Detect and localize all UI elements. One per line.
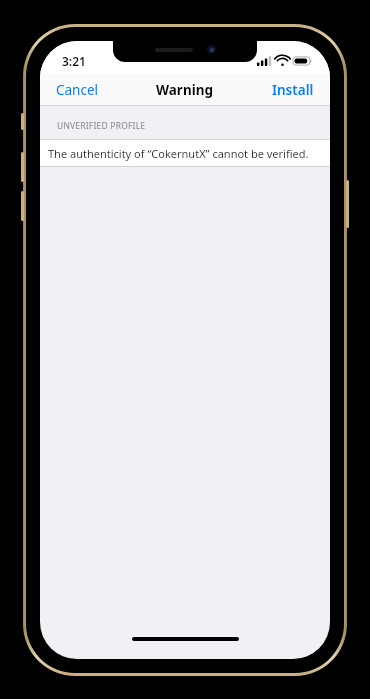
button[interactable]: Install bbox=[256, 76, 330, 104]
staticText: UNVERIFIED PROFILE bbox=[57, 120, 146, 132]
button[interactable]: The authenticity of “CokernutX” cannot b… bbox=[40, 140, 330, 166]
staticText: Warning bbox=[156, 81, 214, 99]
staticText: Cancel bbox=[56, 81, 99, 99]
button[interactable]: Cancel bbox=[40, 76, 115, 104]
staticText: The authenticity of “CokernutX” cannot b… bbox=[48, 146, 309, 161]
staticText: Install bbox=[272, 81, 314, 99]
staticText: 3:21 bbox=[62, 53, 86, 69]
